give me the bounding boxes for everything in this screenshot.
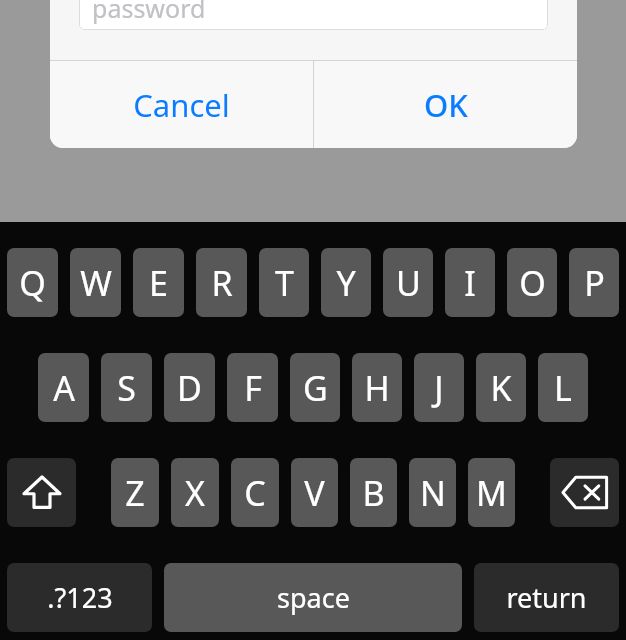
button[interactable]: Shift: [7, 458, 76, 527]
button[interactable]: Q: [7, 248, 58, 317]
button[interactable]: N: [409, 458, 456, 527]
staticText: .?123: [47, 579, 113, 616]
staticText: Z: [125, 470, 145, 516]
button[interactable]: W: [70, 248, 121, 317]
button[interactable]: C: [231, 458, 279, 527]
staticText: C: [244, 470, 266, 516]
button[interactable]: V: [291, 458, 338, 527]
button[interactable]: R: [196, 248, 247, 317]
staticText: B: [362, 470, 385, 516]
staticText: L: [554, 365, 572, 411]
button[interactable]: L: [538, 353, 588, 422]
button[interactable]: G: [290, 353, 340, 422]
staticText: X: [185, 470, 205, 516]
staticText: F: [244, 365, 262, 411]
button[interactable]: Z: [111, 458, 159, 527]
staticText: T: [275, 260, 294, 306]
button[interactable]: password: [79, 0, 548, 30]
button[interactable]: return: [474, 563, 619, 632]
staticText: P: [584, 260, 605, 306]
button[interactable]: B: [350, 458, 397, 527]
button[interactable]: K: [476, 353, 526, 422]
staticText: password: [92, 0, 206, 25]
button[interactable]: H: [352, 353, 402, 422]
button[interactable]: space: [164, 563, 462, 632]
staticText: I: [464, 260, 476, 306]
button[interactable]: A: [38, 353, 89, 422]
staticText: O: [519, 260, 546, 306]
staticText: Q: [19, 260, 46, 306]
button[interactable]: D: [164, 353, 215, 422]
button[interactable]: U: [383, 248, 433, 317]
staticText: A: [53, 365, 75, 411]
button[interactable]: F: [227, 353, 278, 422]
button[interactable]: X: [171, 458, 219, 527]
staticText: W: [80, 260, 112, 306]
staticText: space: [277, 579, 350, 616]
button[interactable]: J: [414, 353, 464, 422]
staticText: R: [211, 260, 233, 306]
staticText: G: [303, 365, 328, 411]
button[interactable]: P: [569, 248, 619, 317]
staticText: K: [490, 365, 512, 411]
button[interactable]: T: [259, 248, 309, 317]
button[interactable]: Cancel: [50, 61, 313, 148]
staticText: H: [364, 365, 390, 411]
button[interactable]: Y: [321, 248, 371, 317]
staticText: N: [420, 470, 446, 516]
staticText: J: [434, 365, 444, 411]
staticText: Y: [336, 260, 356, 306]
staticText: M: [476, 470, 507, 516]
staticText: D: [177, 365, 202, 411]
staticText: V: [304, 470, 325, 516]
staticText: Cancel: [133, 84, 230, 126]
button[interactable]: OK: [314, 61, 577, 148]
staticText: OK: [424, 84, 468, 126]
button[interactable]: E: [133, 248, 184, 317]
button[interactable]: Backspace: [550, 458, 619, 527]
button[interactable]: O: [507, 248, 557, 317]
staticText: S: [117, 365, 136, 411]
staticText: E: [149, 260, 168, 306]
button[interactable]: M: [468, 458, 515, 527]
button[interactable]: S: [101, 353, 152, 422]
staticText: return: [506, 579, 587, 616]
button[interactable]: .?123: [7, 563, 152, 632]
staticText: U: [396, 260, 421, 306]
button[interactable]: I: [445, 248, 495, 317]
